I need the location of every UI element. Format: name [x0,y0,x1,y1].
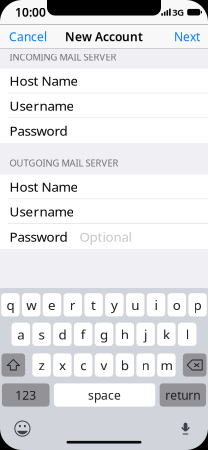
staticText: c [80,356,86,374]
button[interactable]: n [136,353,155,377]
staticText: INCOMING MAIL SERVER [9,51,116,63]
button[interactable]: j [136,323,155,346]
button[interactable]: z [32,353,51,377]
button[interactable]: Next [174,23,208,50]
staticText: v [100,356,107,374]
staticText: t [91,296,96,314]
staticText: Username [9,202,74,220]
staticText: Cancel [9,29,47,44]
button[interactable]: y [105,293,124,316]
staticText: l [186,325,189,343]
button[interactable]: o [168,293,186,316]
button[interactable]: r [64,293,82,316]
staticText: r [70,296,76,314]
staticText: o [173,296,181,314]
button[interactable]: q [1,293,20,316]
staticText: h [121,325,129,343]
staticText: Password [9,122,67,139]
button[interactable]: Cancel [0,23,47,50]
staticText: m [160,356,172,374]
button[interactable]: g [95,323,113,346]
staticText: f [81,325,86,343]
button[interactable]: f [74,323,92,346]
button[interactable]: m [157,353,176,377]
staticText: g [100,325,108,343]
button[interactable]: x [53,353,72,377]
staticText: j [144,325,147,343]
button[interactable]: t [84,293,103,316]
staticText: return [165,387,200,403]
button[interactable]: v [95,353,113,377]
button[interactable]: return [160,383,206,407]
staticText: Username [9,97,74,114]
button[interactable]: space [54,383,155,407]
staticText: x [59,356,66,374]
button[interactable]: u [126,293,144,316]
button[interactable]: p [188,293,207,316]
staticText: e [48,296,56,314]
button[interactable]: Delete [183,353,206,377]
staticText: s [39,325,45,343]
staticText: Host Name [9,178,78,195]
staticText: a [17,325,24,343]
staticText: d [58,325,66,343]
staticText: 123 [15,387,36,403]
staticText: OUTGOING MAIL SERVER [9,157,118,169]
staticText: u [131,296,139,314]
staticText: New Account [65,29,143,44]
staticText: Host Name [9,72,78,89]
staticText: q [6,296,14,314]
button[interactable]: c [74,353,92,377]
staticText: b [121,356,129,374]
button[interactable]: a [12,323,30,346]
staticText: n [142,356,150,374]
staticText: Optional [79,228,131,245]
button[interactable]: h [116,323,134,346]
button[interactable]: Dictation [181,422,190,435]
staticText: p [194,296,202,314]
staticText: y [111,296,118,314]
staticText: 3G [172,6,184,18]
button[interactable]: i [147,293,165,316]
button[interactable]: l [178,323,196,346]
staticText: 10:00 [15,4,46,20]
button[interactable]: k [157,323,176,346]
button[interactable]: 123 [2,383,49,407]
staticText: w [26,296,36,314]
button[interactable]: Emoji [14,421,30,437]
button[interactable]: w [22,293,40,316]
staticText: Password [9,228,67,245]
button[interactable]: s [32,323,51,346]
staticText: k [163,325,170,343]
button[interactable]: Shift [1,353,25,377]
staticText: Next [174,29,200,44]
button[interactable]: b [116,353,134,377]
staticText: z [39,356,45,374]
button[interactable]: d [53,323,72,346]
staticText: space [88,387,121,403]
staticText: i [154,296,157,314]
button[interactable]: e [43,293,61,316]
